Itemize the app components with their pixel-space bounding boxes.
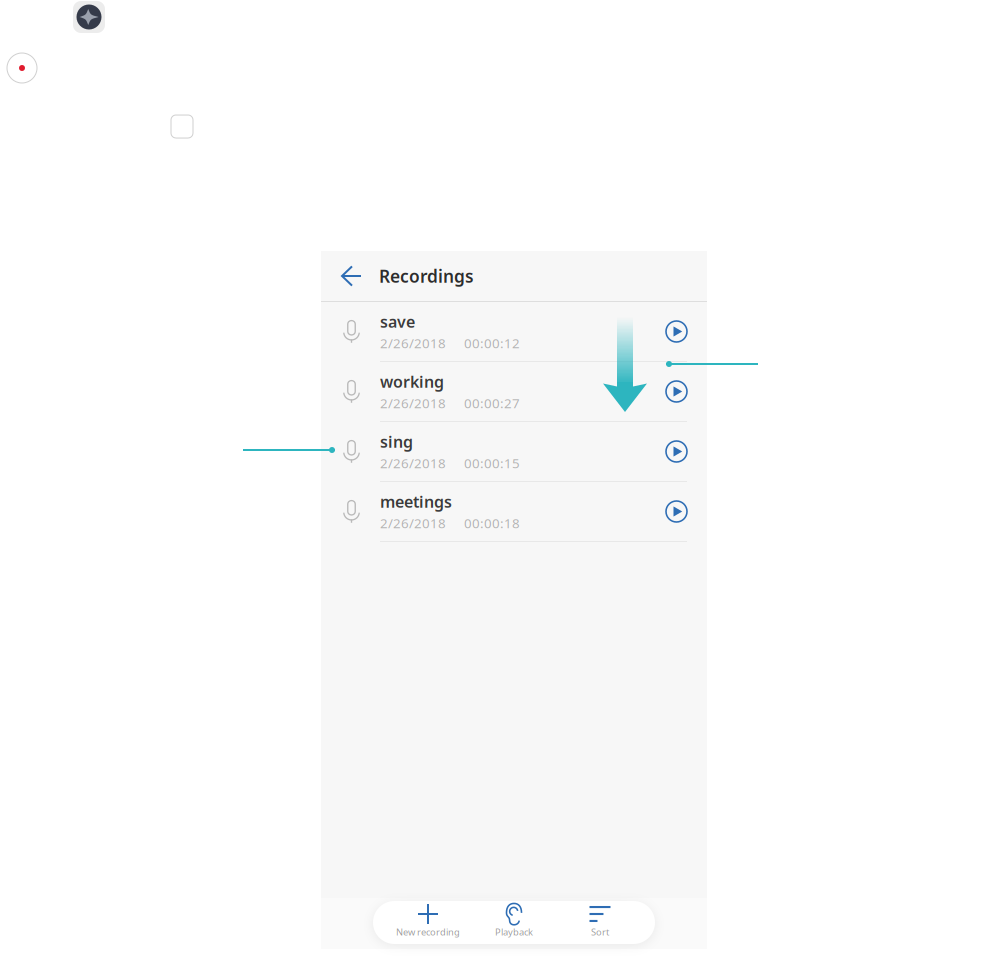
staticText: save: [380, 311, 415, 332]
staticText: meetings: [380, 491, 452, 512]
staticText: sing: [380, 431, 413, 452]
staticText: 00:00:18: [464, 514, 520, 532]
staticText: 2/26/2018: [380, 334, 446, 352]
staticText: 00:00:27: [464, 394, 520, 412]
staticText: Playback: [495, 926, 533, 938]
staticText: 2/26/2018: [380, 454, 446, 472]
staticText: Sort: [591, 926, 609, 938]
staticText: working: [380, 371, 444, 392]
staticText: 2/26/2018: [380, 394, 446, 412]
button[interactable]: Playback: [471, 901, 557, 944]
button[interactable]: Sort: [557, 901, 643, 944]
button[interactable]: Back: [336, 261, 366, 291]
staticText: 2/26/2018: [380, 514, 446, 532]
button[interactable]: save: [321, 302, 707, 362]
button[interactable]: sing: [321, 422, 707, 482]
staticText: New recording: [396, 926, 460, 938]
button[interactable]: New recording: [385, 901, 471, 944]
staticText: 00:00:12: [464, 334, 520, 352]
button[interactable]: meetings: [321, 482, 707, 542]
button[interactable]: working: [321, 362, 707, 422]
staticText: 00:00:15: [464, 454, 520, 472]
staticText: Recordings: [379, 264, 474, 287]
